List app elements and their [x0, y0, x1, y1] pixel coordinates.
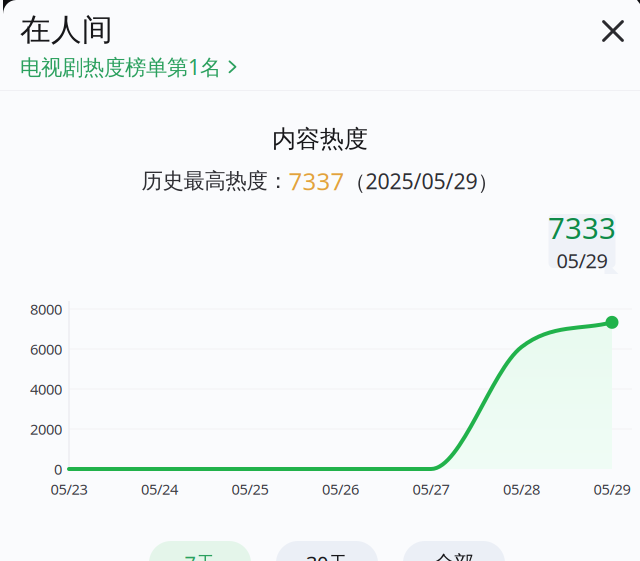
staticText: 05/29: [593, 479, 630, 499]
staticText: 0: [54, 459, 62, 479]
staticText: 05/28: [503, 479, 540, 499]
staticText: 05/26: [322, 479, 359, 499]
staticText: 7337: [288, 165, 344, 197]
staticText: 6000: [30, 339, 62, 359]
button[interactable]: 7天: [149, 541, 251, 561]
button[interactable]: Close: [589, 7, 637, 55]
staticText: 30天: [306, 550, 348, 561]
staticText: 在人间: [20, 11, 113, 49]
staticText: 05/25: [231, 479, 268, 499]
staticText: 历史最高热度：: [141, 168, 288, 194]
staticText: 8000: [30, 299, 62, 319]
staticText: 7天: [184, 550, 215, 561]
staticText: 05/24: [141, 479, 178, 499]
staticText: 内容热度: [272, 124, 368, 154]
staticText: 电视剧热度榜单第1名: [20, 53, 221, 81]
staticText: 全部: [434, 551, 474, 561]
staticText: 05/23: [50, 479, 87, 499]
button[interactable]: 电视剧热度榜单第1名: [20, 53, 237, 81]
button[interactable]: 30天: [276, 541, 378, 561]
staticText: 7333: [548, 208, 616, 247]
button[interactable]: 全部: [403, 541, 505, 561]
staticText: 05/29: [556, 247, 607, 274]
staticText: 2000: [30, 419, 62, 439]
staticText: 05/27: [412, 479, 449, 499]
staticText: （2025/05/29）: [344, 167, 498, 195]
staticText: 4000: [30, 379, 62, 399]
